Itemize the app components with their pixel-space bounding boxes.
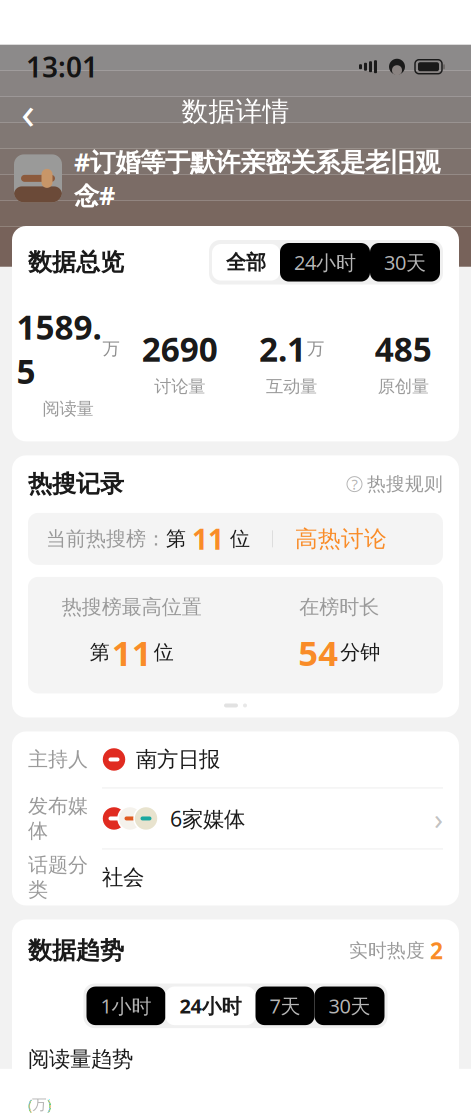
staticText: 万: [307, 338, 324, 359]
staticText: 在榜时长: [299, 595, 379, 619]
staticText: 话题分类: [28, 853, 88, 902]
staticText: 1小时: [100, 993, 151, 1019]
staticText: 1589.5: [16, 305, 101, 393]
staticText: 南方日报: [136, 746, 220, 773]
staticText: 实时热度: [349, 939, 425, 962]
staticText: 全部: [226, 250, 266, 275]
staticText: 数据详情: [181, 95, 289, 128]
staticText: 社会: [102, 864, 144, 891]
staticText: 位: [154, 640, 174, 665]
staticText: 2.1: [259, 327, 306, 371]
staticText: 导语：每一个证据都证明！吴某当时根本不愿意发生关系: [14, 230, 434, 279]
staticText: 2690: [142, 327, 218, 371]
button[interactable]: 24小时: [280, 243, 370, 282]
staticText: 分钟: [340, 640, 380, 665]
staticText: #订婚等于默许亲密关系是老旧观念#: [74, 145, 440, 212]
staticText: 阅读量: [42, 398, 93, 419]
button[interactable]: 全部: [212, 244, 280, 281]
staticText: 第: [166, 527, 192, 551]
button[interactable]: ?: [347, 473, 443, 496]
staticText: 热搜规则: [367, 473, 443, 496]
button[interactable]: Back: [6, 90, 50, 134]
button[interactable]: 30天: [314, 987, 384, 1025]
staticText: 主持人: [28, 747, 88, 772]
button[interactable]: 7天: [255, 987, 314, 1025]
staticText: 第: [90, 640, 110, 665]
staticText: 13:01: [26, 48, 98, 85]
staticText: 当前热搜榜：: [46, 527, 166, 551]
staticText: 发布媒体: [28, 794, 88, 843]
staticText: 数据趋势: [28, 936, 124, 965]
staticText: 485: [375, 327, 432, 371]
staticText: 11: [112, 629, 152, 675]
staticText: 阅读量趋势: [28, 1046, 133, 1072]
staticText: 数据总览: [28, 247, 124, 277]
staticText: 7天: [269, 993, 300, 1019]
staticText: 互动量: [266, 376, 317, 397]
staticText: 11: [192, 520, 224, 557]
button[interactable]: 30天: [370, 243, 440, 282]
staticText: 24小时: [294, 249, 356, 276]
staticText: 24小时: [179, 993, 241, 1019]
staticText: 热搜榜最高位置: [62, 595, 202, 619]
staticText: ‹: [21, 82, 35, 142]
staticText: 万: [102, 338, 119, 359]
staticText: 原创量: [378, 376, 429, 397]
staticText: (万): [28, 1094, 51, 1114]
staticText: 6家媒体: [170, 804, 245, 833]
staticText: 位: [224, 527, 250, 551]
staticText: ›: [434, 799, 443, 838]
staticText: 30天: [384, 249, 426, 276]
button[interactable]: 24小时: [165, 987, 255, 1025]
staticText: 2: [430, 935, 443, 966]
staticText: 54: [298, 629, 338, 675]
staticText: 热搜记录: [28, 469, 124, 499]
staticText: 讨论量: [154, 376, 205, 397]
staticText: ?: [351, 474, 357, 494]
button[interactable]: 1小时: [86, 987, 165, 1025]
staticText: 30天: [328, 993, 370, 1019]
staticText: 高热讨论: [295, 525, 387, 553]
button[interactable]: 发布媒体: [12, 788, 459, 848]
